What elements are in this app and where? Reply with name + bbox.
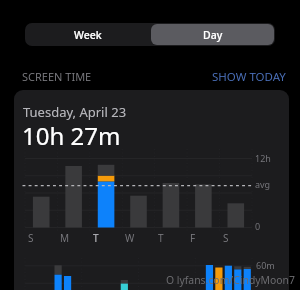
staticText: T	[158, 231, 164, 245]
staticText: Tuesday, April 23	[23, 103, 127, 121]
staticText: W	[125, 231, 135, 245]
button[interactable]: Day	[151, 24, 274, 45]
staticText: Day	[203, 28, 223, 42]
staticText: Week	[74, 28, 102, 42]
staticText: M	[60, 231, 70, 245]
staticText: F	[190, 231, 196, 245]
staticText: O lyfans.com/CindyMoon7	[166, 273, 295, 287]
staticText: S	[28, 231, 34, 245]
staticText: avg	[255, 178, 271, 190]
staticText: SHOW TODAY	[212, 69, 286, 85]
staticText: SCREEN TIME	[22, 69, 92, 84]
staticText: 60m	[256, 259, 275, 271]
staticText: 10h 27m	[22, 119, 121, 152]
staticText: 12h	[255, 152, 271, 164]
button[interactable]: SHOW TODAY	[208, 65, 290, 89]
staticText: S	[223, 231, 229, 245]
staticText: 0	[255, 220, 261, 232]
button[interactable]: Week	[25, 23, 150, 46]
staticText: T	[93, 231, 99, 245]
